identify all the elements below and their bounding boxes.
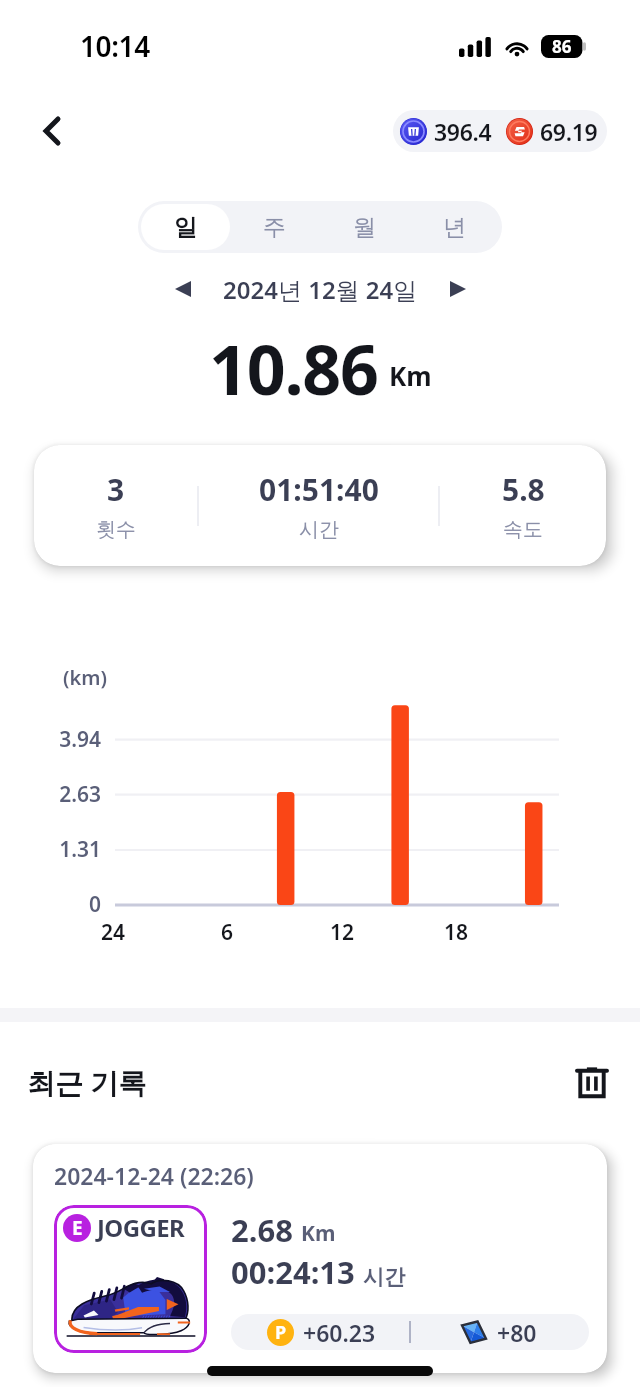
button[interactable]: E [54, 1205, 207, 1353]
staticText: Km [389, 358, 432, 393]
staticText: JOGGER [97, 1211, 185, 1244]
staticText: 2.68 [231, 1209, 293, 1251]
staticText: +80 [497, 1317, 537, 1348]
button[interactable]: 주 [230, 204, 319, 250]
button[interactable]: Delete records [568, 1062, 616, 1102]
button[interactable]: 2024-12-24 (22:26) [33, 1144, 607, 1373]
staticText: +60.23 [303, 1317, 376, 1348]
staticText: 시간 [299, 517, 339, 542]
staticText: 12 [312, 918, 372, 947]
button[interactable]: 일 [141, 204, 230, 250]
button[interactable]: Previous day [161, 267, 205, 311]
staticText: 속도 [503, 517, 543, 542]
staticText: 2024-12-24 (22:26) [54, 1160, 254, 1191]
button[interactable]: P [231, 1314, 589, 1350]
staticText: P [275, 1320, 287, 1345]
staticText: 5.8 [502, 469, 545, 510]
button[interactable]: 396.4 [393, 110, 607, 152]
staticText: 2.63 [1, 780, 101, 809]
staticText: 3.94 [1, 725, 101, 754]
staticText: E [72, 1215, 83, 1241]
staticText: 18 [426, 918, 486, 947]
staticText: 10:14 [80, 27, 150, 65]
staticText: 10.86 [209, 322, 378, 401]
button[interactable]: 월 [319, 204, 409, 250]
button[interactable]: Back [26, 105, 78, 157]
staticText: 2024년 12월 24일 [223, 273, 418, 306]
staticText: 월 [353, 213, 376, 242]
staticText: 최근 기록 [27, 1063, 147, 1101]
staticText: Km [301, 1219, 336, 1248]
staticText: 3 [107, 469, 125, 510]
staticText: 24 [83, 918, 143, 947]
staticText: 일 [174, 213, 197, 242]
button[interactable]: Next day [436, 267, 480, 311]
staticText: 86 [552, 35, 572, 58]
staticText: 01:51:40 [259, 469, 379, 510]
staticText: 시간 [363, 1264, 405, 1290]
staticText: 396.4 [434, 116, 492, 147]
staticText: 주 [263, 213, 286, 242]
button[interactable]: 년 [409, 204, 499, 250]
staticText: 횟수 [96, 517, 136, 542]
staticText: 00:24:13 [231, 1251, 355, 1293]
staticText: 년 [443, 213, 466, 242]
staticText: 6 [197, 918, 257, 947]
staticText: (km) [63, 664, 107, 691]
staticText: 1.31 [1, 835, 101, 864]
staticText: 69.19 [540, 116, 598, 147]
staticText: 0 [1, 890, 101, 919]
